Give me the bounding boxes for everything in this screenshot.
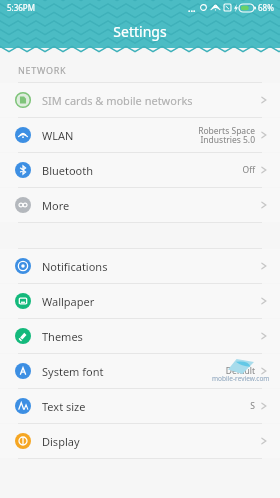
button[interactable]: SIM cards [0, 83, 280, 117]
staticText: Off [242, 164, 255, 176]
staticText: NETWORK [18, 64, 67, 76]
other: Notifications [15, 258, 31, 274]
other: Themes [15, 328, 31, 344]
button[interactable]: Themes [0, 319, 280, 353]
other: Wallpaper [15, 293, 31, 309]
staticText: 68% [258, 2, 274, 13]
staticText: Notifications [42, 259, 108, 274]
button[interactable]: Bluetooth [0, 153, 280, 187]
staticText: System font [42, 364, 104, 379]
other: Bluetooth [15, 162, 31, 178]
staticText: Themes [42, 329, 83, 344]
staticText: More [42, 198, 70, 213]
staticText: mobile-review.com [212, 374, 270, 383]
staticText: Settings [113, 22, 167, 41]
other: SIM cards [15, 92, 31, 108]
staticText: Default [225, 365, 255, 377]
other: More [15, 197, 31, 213]
staticText: 5:36PM [7, 2, 35, 13]
staticText: Text size [42, 399, 86, 414]
other: WLAN [15, 127, 31, 143]
button[interactable]: More [0, 188, 280, 222]
staticText: Display [42, 434, 80, 449]
staticText: Bluetooth [42, 163, 94, 178]
button[interactable]: WLAN [0, 118, 280, 152]
staticText: ... [188, 2, 196, 14]
button[interactable]: Display [0, 424, 280, 458]
other: System font [15, 363, 31, 379]
other: Text size [15, 398, 31, 414]
other: Display [15, 433, 31, 449]
button[interactable]: Text size [0, 389, 280, 423]
button[interactable]: Notifications [0, 249, 280, 283]
staticText: Wallpaper [42, 294, 95, 309]
button[interactable]: Wallpaper [0, 284, 280, 318]
button[interactable]: System font [0, 354, 280, 388]
staticText: S [250, 400, 255, 412]
staticText: Roberts Space Industries 5.0 [198, 125, 255, 146]
staticText: WLAN [42, 128, 74, 143]
staticText: SIM cards & mobile networks [42, 93, 193, 108]
